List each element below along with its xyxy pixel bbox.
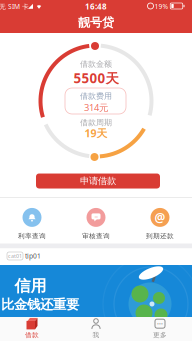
staticText: 无 SIM 卡: [0, 2, 29, 11]
staticText: 利率查询: [18, 232, 46, 240]
button[interactable]: ···: [128, 318, 192, 339]
staticText: 314元: [84, 101, 108, 114]
staticText: ···: [157, 319, 163, 328]
staticText: 更多: [153, 331, 167, 339]
staticText: 借款金额: [80, 59, 112, 69]
staticText: 借款周期: [80, 118, 112, 127]
button[interactable]: 申请借款: [36, 173, 160, 188]
staticText: 我: [92, 331, 99, 339]
staticText: 5500天: [73, 69, 118, 87]
button[interactable]: cat01: [7, 252, 23, 260]
staticText: ···: [94, 213, 97, 220]
button[interactable]: ···: [64, 208, 128, 240]
staticText: 信用: [14, 276, 46, 296]
button[interactable]: @: [128, 208, 192, 240]
staticText: 16:48: [85, 1, 107, 12]
staticText: 申请借款: [80, 175, 116, 187]
staticText: 审核查询: [82, 232, 110, 240]
staticText: 借款: [25, 331, 39, 339]
staticText: 借款费用: [80, 91, 112, 101]
staticText: tip01: [25, 252, 41, 260]
staticText: @: [154, 209, 165, 225]
button[interactable]: 借款: [0, 318, 64, 339]
staticText: 19天: [84, 126, 107, 140]
staticText: cat01: [8, 252, 22, 260]
button[interactable]: 信用广告: [0, 265, 192, 317]
button[interactable]: 我: [64, 318, 128, 339]
staticText: 比金钱还重要: [1, 296, 79, 313]
staticText: 靓号贷: [78, 15, 114, 30]
button[interactable]: 利率查询: [0, 208, 64, 240]
staticText: 19%: [154, 2, 168, 11]
staticText: 到期还款: [146, 232, 174, 240]
